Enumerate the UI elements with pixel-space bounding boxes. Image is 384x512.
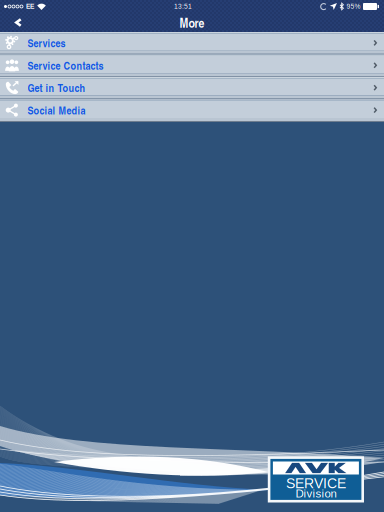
staticText: 13:51 bbox=[174, 3, 192, 10]
staticText: Service Contacts bbox=[27, 57, 103, 73]
staticText: Social Media bbox=[27, 102, 85, 118]
button[interactable]: Social Media bbox=[0, 99, 384, 121]
button[interactable]: Service Contacts bbox=[0, 54, 384, 76]
staticText: EE bbox=[26, 3, 34, 10]
button[interactable]: Get in Touch bbox=[0, 77, 384, 99]
staticText: Division bbox=[295, 487, 336, 500]
staticText: Get in Touch bbox=[27, 80, 85, 95]
button[interactable]: Back bbox=[0, 13, 44, 32]
staticText: More bbox=[179, 13, 204, 32]
button[interactable]: Services bbox=[0, 32, 384, 54]
staticText: 95% bbox=[346, 3, 360, 10]
staticText: Services bbox=[27, 35, 65, 51]
staticText: SERVICE bbox=[286, 476, 346, 491]
